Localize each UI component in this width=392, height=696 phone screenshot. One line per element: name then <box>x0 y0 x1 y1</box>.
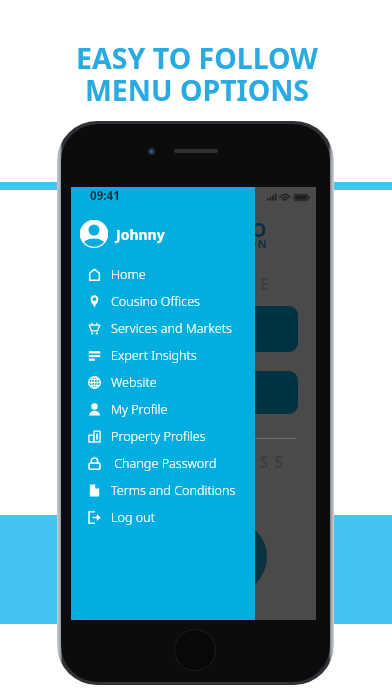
staticText: COUSINO <box>165 216 268 243</box>
staticText: Terms and Conditions <box>111 482 236 499</box>
button[interactable]: My Profile <box>71 396 255 423</box>
button[interactable]: Log out <box>71 504 255 531</box>
staticText: Home <box>111 266 146 283</box>
staticText: CORPORATION <box>174 236 268 251</box>
staticText: EASY TO FOLLOW MENU OPTIONS <box>1 39 392 109</box>
staticText: Change Password <box>111 455 217 472</box>
button[interactable]: Terms and Conditions <box>71 477 255 504</box>
staticText: Log out <box>111 509 155 526</box>
staticText: Find a property <box>145 320 244 338</box>
staticText: OUR OFFICE <box>73 273 318 294</box>
staticText: Services and Markets <box>111 320 232 337</box>
button[interactable]: Our services <box>90 371 298 414</box>
button[interactable]: Find a property <box>90 306 298 352</box>
staticText: Property Profiles <box>111 428 206 445</box>
staticText: My Profile <box>111 401 168 418</box>
staticText: Website <box>111 374 157 391</box>
button[interactable]: Change Password <box>71 450 255 477</box>
staticText: Cousino Offices <box>111 293 200 310</box>
button[interactable]: Property Profiles <box>71 423 255 450</box>
staticText: Johnny <box>116 225 165 244</box>
button[interactable]: Website <box>71 369 255 396</box>
button[interactable]: Services and Markets <box>71 315 255 342</box>
staticText: Expert Insights <box>111 347 197 364</box>
staticText: Our services <box>154 384 235 402</box>
staticText: 09:41 <box>90 188 120 204</box>
staticText: OUR BUSINESS <box>73 450 318 472</box>
button[interactable]: Home <box>71 261 255 288</box>
button[interactable]: Expert Insights <box>71 342 255 369</box>
button[interactable]: Cousino Offices <box>71 288 255 315</box>
